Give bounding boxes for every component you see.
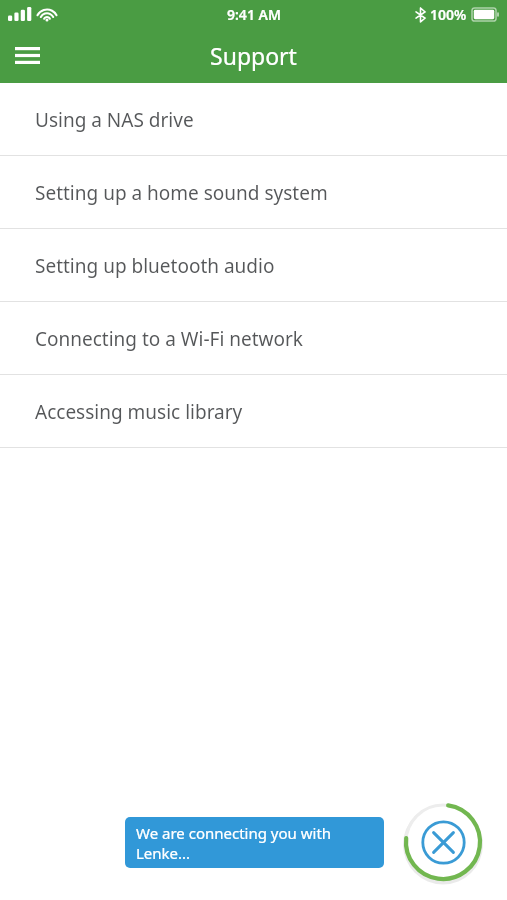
- button[interactable]: Close chat: [403, 802, 483, 882]
- button[interactable]: Menu: [0, 28, 54, 83]
- button[interactable]: Using a NAS drive: [0, 83, 507, 156]
- staticText: Connecting to a Wi-Fi network: [35, 326, 303, 352]
- staticText: We are connecting you with Lenke...: [136, 823, 376, 863]
- staticText: Support: [210, 40, 297, 71]
- staticText: Using a NAS drive: [35, 107, 194, 133]
- staticText: 100%: [430, 5, 467, 24]
- button[interactable]: Accessing music library: [0, 375, 507, 448]
- button[interactable]: Setting up bluetooth audio: [0, 229, 507, 302]
- button[interactable]: We are connecting you with Lenke...: [125, 817, 384, 868]
- button[interactable]: Setting up a home sound system: [0, 156, 507, 229]
- staticText: Setting up a home sound system: [35, 180, 328, 206]
- staticText: 9:41 AM: [227, 5, 281, 24]
- button[interactable]: Connecting to a Wi-Fi network: [0, 302, 507, 375]
- staticText: Accessing music library: [35, 399, 243, 425]
- staticText: Setting up bluetooth audio: [35, 253, 275, 279]
